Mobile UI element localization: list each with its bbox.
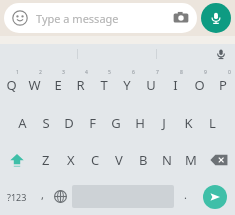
staticText: , [41, 187, 44, 202]
staticText: L [209, 114, 216, 132]
button[interactable]: R [69, 66, 92, 104]
button[interactable]: Voice input [213, 46, 229, 62]
button[interactable]: B [131, 141, 155, 178]
staticText: T [100, 76, 108, 94]
staticText: A [18, 114, 27, 132]
staticText: Type a message [36, 11, 119, 26]
button[interactable]: Backspace [203, 141, 235, 178]
button[interactable]: Change language [50, 178, 70, 215]
staticText: Q [6, 76, 17, 94]
button[interactable]: T [92, 66, 115, 104]
staticText: 8 [180, 69, 183, 76]
staticText: Z [42, 151, 50, 169]
staticText: V [115, 151, 123, 169]
staticText: E [54, 76, 62, 94]
button[interactable]: F [80, 104, 104, 141]
staticText: Y [123, 76, 131, 94]
button[interactable]: M [179, 141, 203, 178]
staticText: N [162, 151, 172, 169]
staticText: C [91, 151, 100, 169]
staticText: 1 [16, 69, 19, 76]
button[interactable]: N [155, 141, 179, 178]
staticText: 7 [156, 69, 159, 76]
staticText: 9 [204, 69, 207, 76]
staticText: G [111, 114, 121, 132]
staticText: 2 [39, 69, 42, 76]
button[interactable]: E [46, 66, 69, 104]
staticText: J [162, 114, 166, 132]
button[interactable]: Q [0, 66, 23, 104]
staticText: 6 [132, 69, 135, 76]
button[interactable]: A [11, 104, 34, 141]
button[interactable]: Shift [0, 141, 33, 178]
staticText: R [76, 76, 85, 94]
staticText: 5 [108, 69, 111, 76]
button[interactable]: L [200, 104, 224, 141]
button[interactable]: U [139, 66, 163, 104]
staticText: H [135, 114, 145, 132]
button[interactable]: Emoji [4, 3, 197, 33]
button[interactable]: G [104, 104, 128, 141]
button[interactable]: Emoji [12, 10, 28, 26]
button[interactable]: P [211, 66, 235, 104]
button[interactable]: C [83, 141, 107, 178]
button[interactable]: V [107, 141, 131, 178]
button[interactable]: ?123 [0, 178, 34, 215]
staticText: O [194, 76, 205, 94]
staticText: 0 [228, 69, 231, 76]
button[interactable]: J [152, 104, 176, 141]
button[interactable]: S [34, 104, 57, 141]
staticText: D [64, 114, 74, 132]
button[interactable]: H [128, 104, 152, 141]
button[interactable]: Camera [173, 10, 189, 26]
staticText: ?123 [7, 191, 27, 203]
staticText: P [219, 76, 227, 94]
button[interactable]: Period [176, 178, 194, 215]
staticText: I [173, 76, 178, 94]
button[interactable]: Voice message [201, 3, 231, 33]
staticText: B [139, 151, 148, 169]
staticText: 3 [62, 69, 65, 76]
staticText: X [67, 151, 75, 169]
staticText: . [184, 187, 187, 202]
staticText: W [28, 76, 41, 94]
staticText: M [185, 151, 197, 169]
button[interactable]: X [58, 141, 83, 178]
button[interactable]: O [187, 66, 211, 104]
staticText: 4 [85, 69, 88, 76]
button[interactable]: Z [33, 141, 58, 178]
button[interactable]: W [23, 66, 46, 104]
button[interactable]: Send [203, 185, 227, 209]
button[interactable]: I [163, 66, 187, 104]
staticText: U [146, 76, 156, 94]
button[interactable]: Comma [34, 178, 50, 215]
button[interactable] [157, 44, 235, 64]
button[interactable]: D [57, 104, 80, 141]
staticText: F [89, 114, 96, 132]
staticText: S [42, 114, 50, 132]
button[interactable]: Y [115, 66, 139, 104]
staticText: K [184, 114, 193, 132]
button[interactable]: K [176, 104, 200, 141]
